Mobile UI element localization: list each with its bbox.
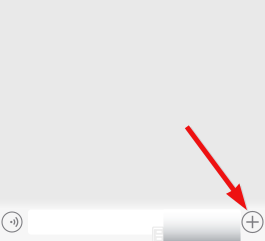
button[interactable]: Add attachment — [242, 211, 263, 232]
button[interactable]: Voice message — [2, 212, 22, 232]
